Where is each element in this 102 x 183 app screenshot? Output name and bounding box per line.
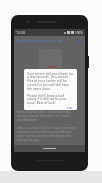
- staticText: Auto-rotation sensor fix: [16, 38, 63, 44]
- staticText: Auto-rotation does not work if the scree…: [17, 109, 77, 122]
- staticText: OK: [67, 106, 73, 109]
- staticText: This is a simple fix for many common rot…: [17, 125, 77, 142]
- staticText: Please don't leave a bad rating if it di…: [27, 93, 74, 105]
- button[interactable]: OK: [66, 105, 74, 110]
- button[interactable]: Auto-rotation sensor fix: [14, 36, 85, 46]
- staticText: 10:08: [16, 30, 25, 35]
- staticText: Your screen will turn blank for a few se…: [27, 71, 74, 91]
- other: Info: [78, 39, 82, 43]
- staticText: 100%: [75, 31, 83, 35]
